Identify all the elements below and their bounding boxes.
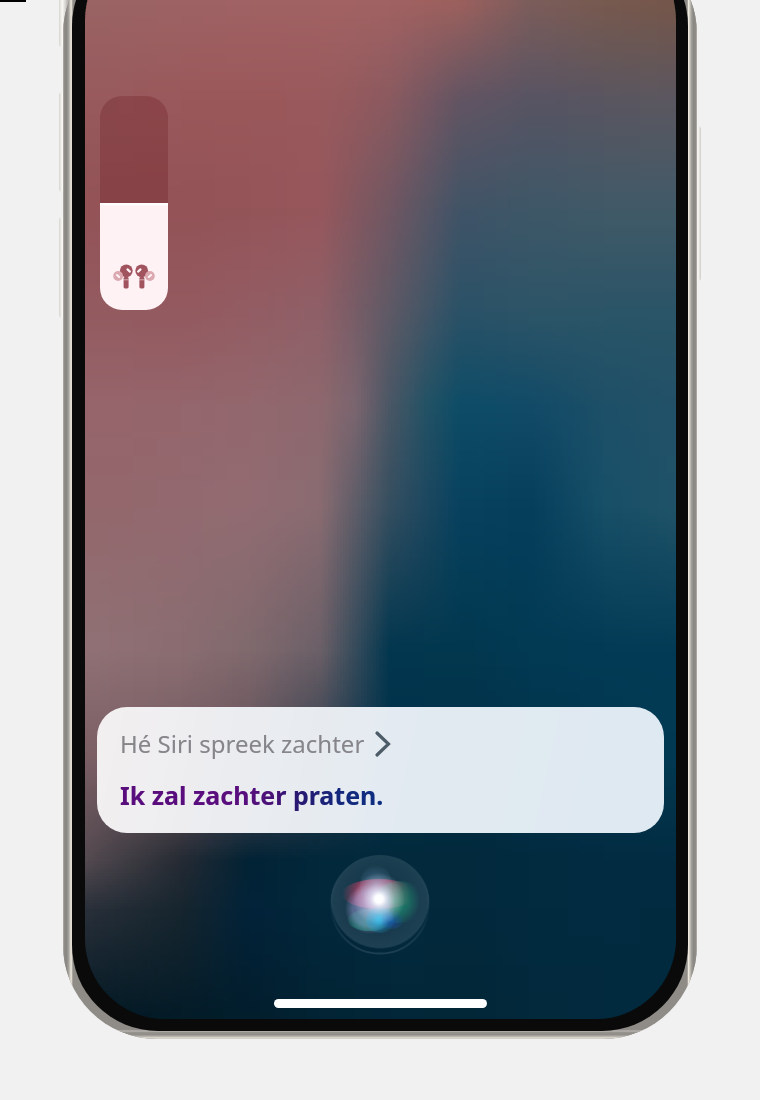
button[interactable]: Siri (330, 855, 430, 955)
button[interactable] (97, 707, 664, 833)
staticText: Hé Siri spreek zachter (120, 727, 365, 760)
staticText: Ik zal zachter praten. (120, 778, 384, 812)
button[interactable]: AirPods volume (100, 96, 168, 310)
